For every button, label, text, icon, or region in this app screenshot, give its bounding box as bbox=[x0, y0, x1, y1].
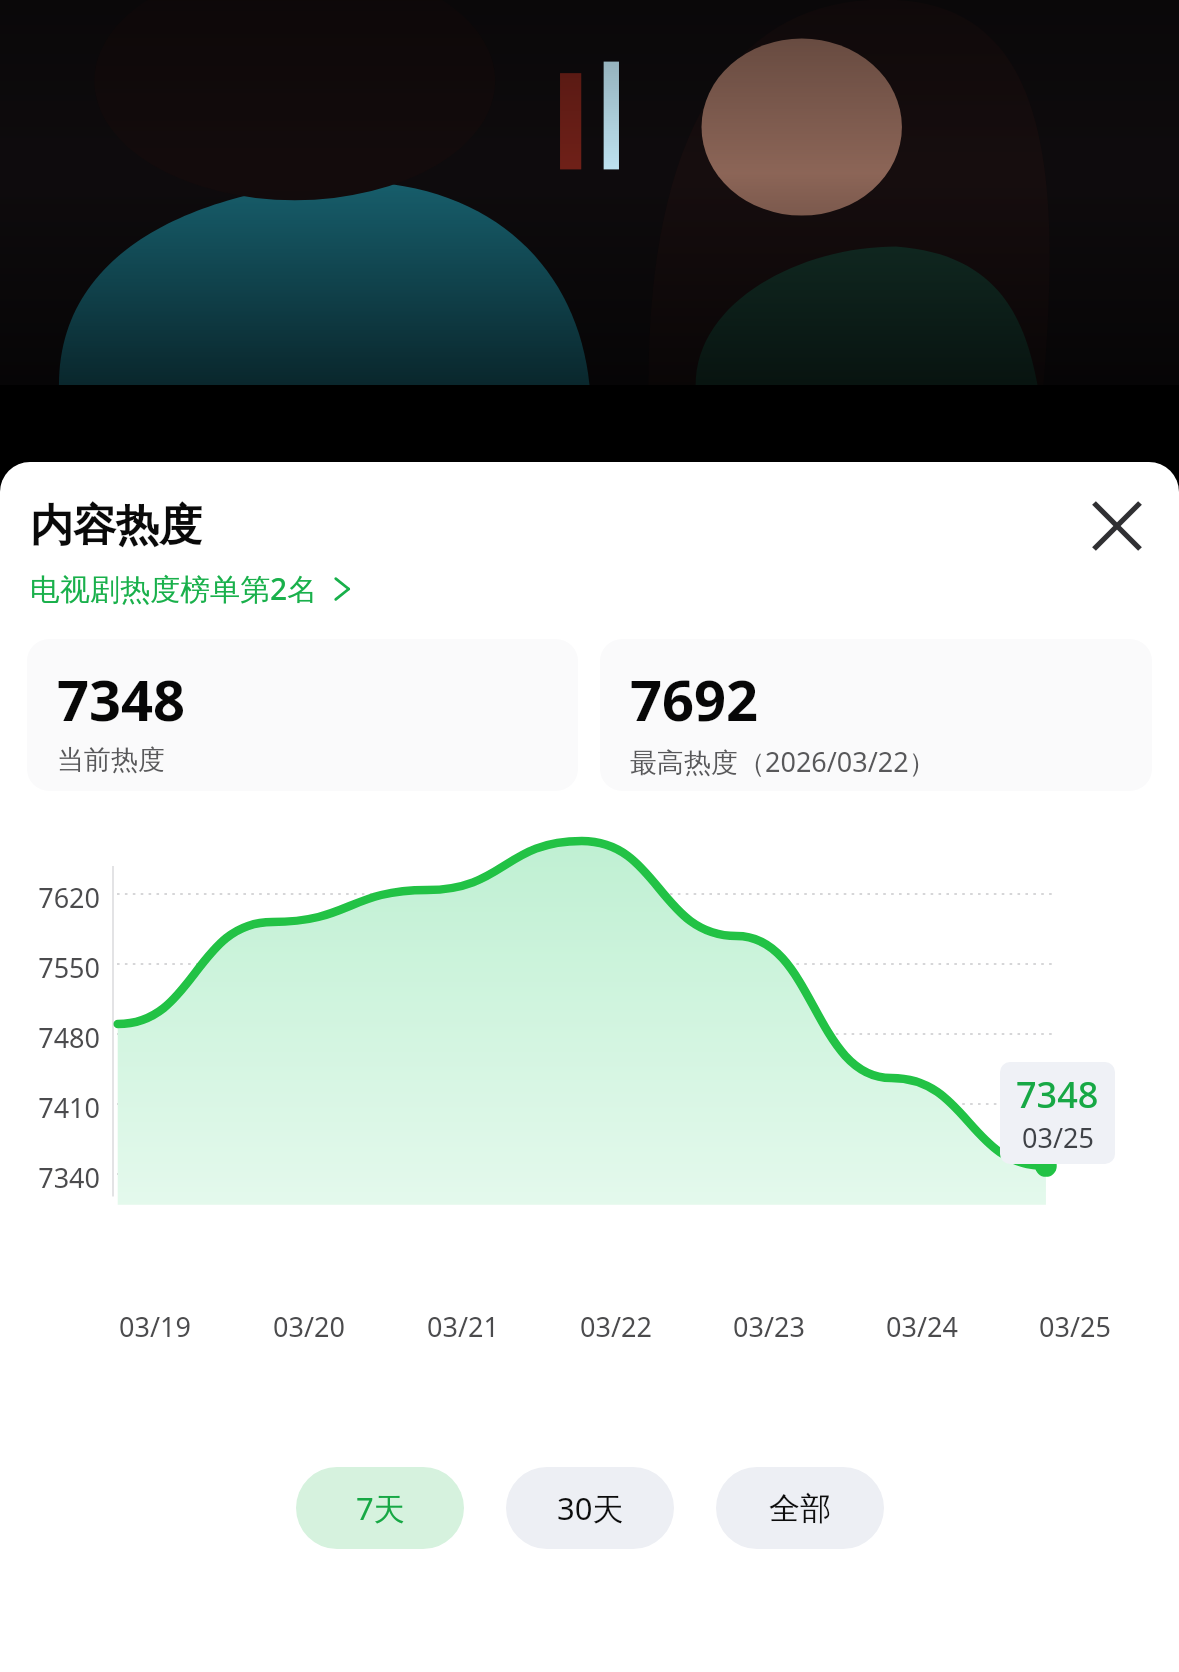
staticText: 03/20 bbox=[273, 1308, 345, 1345]
button[interactable]: 全部 bbox=[716, 1467, 884, 1549]
button[interactable]: 7348 bbox=[27, 639, 578, 791]
staticText: 03/24 bbox=[886, 1308, 958, 1345]
staticText: 7620 bbox=[0, 879, 100, 916]
staticText: 7340 bbox=[0, 1159, 100, 1196]
staticText: 当前热度 bbox=[57, 743, 165, 777]
staticText: 7692 bbox=[630, 661, 759, 737]
staticText: 03/23 bbox=[733, 1308, 805, 1345]
button[interactable]: 7692 bbox=[600, 639, 1152, 791]
button[interactable]: Close bbox=[1079, 488, 1155, 564]
staticText: 7410 bbox=[0, 1089, 100, 1126]
button[interactable]: 30天 bbox=[506, 1467, 674, 1549]
staticText: 03/21 bbox=[427, 1308, 499, 1345]
button[interactable]: 7天 bbox=[296, 1467, 464, 1549]
staticText: 7348 bbox=[57, 661, 186, 737]
staticText: 电视剧热度榜单第2名 bbox=[30, 568, 318, 609]
staticText: 7480 bbox=[0, 1019, 100, 1056]
staticText: 03/19 bbox=[119, 1308, 191, 1345]
button[interactable]: 电视剧热度榜单第2名 bbox=[30, 568, 356, 609]
staticText: 全部 bbox=[769, 1489, 831, 1528]
staticText: 03/25 bbox=[1022, 1119, 1094, 1156]
staticText: 7348 bbox=[1016, 1070, 1099, 1119]
staticText: 内容热度 bbox=[30, 499, 202, 553]
staticText: 03/25 bbox=[1039, 1308, 1111, 1345]
staticText: 7550 bbox=[0, 949, 100, 986]
staticText: 03/22 bbox=[580, 1308, 652, 1345]
staticText: 7天 bbox=[356, 1487, 405, 1529]
staticText: 最高热度（2026/03/22） bbox=[630, 743, 936, 780]
staticText: 30天 bbox=[557, 1487, 624, 1529]
